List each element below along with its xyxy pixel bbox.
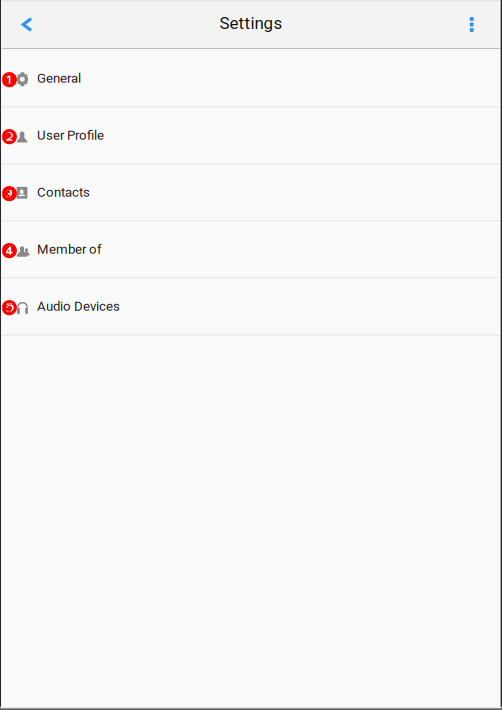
staticText: Member of xyxy=(37,241,102,257)
staticText: Audio Devices xyxy=(37,298,120,314)
staticText: General xyxy=(37,70,81,86)
staticText: Settings xyxy=(219,13,282,33)
button[interactable]: User Profile xyxy=(0,107,502,163)
button[interactable]: Audio Devices xyxy=(0,278,502,334)
button[interactable]: Back xyxy=(0,2,44,46)
button[interactable]: General xyxy=(0,50,502,106)
button[interactable]: Member of xyxy=(0,221,502,277)
staticText: Contacts xyxy=(37,184,90,200)
staticText: User Profile xyxy=(37,127,104,143)
button[interactable]: More options xyxy=(458,2,502,46)
button[interactable]: Contacts xyxy=(0,164,502,220)
